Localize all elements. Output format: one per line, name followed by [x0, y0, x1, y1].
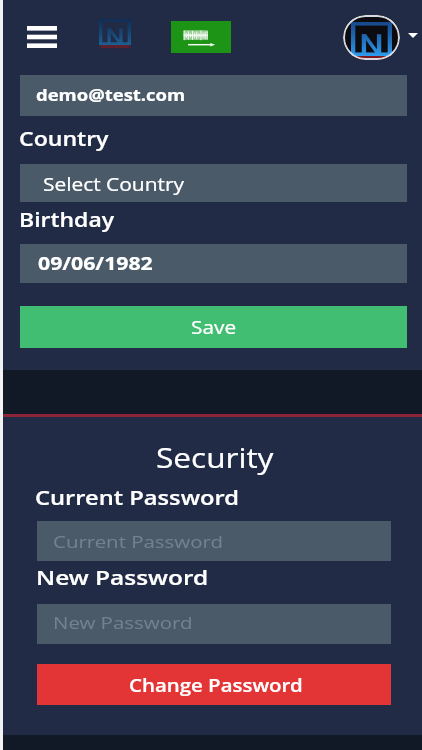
button[interactable] [20, 306, 407, 348]
button[interactable]: Open account menu [403, 26, 422, 45]
staticText: Birthday [19, 206, 114, 232]
staticText: Current Password [35, 484, 240, 511]
button[interactable]: Neom Capital home [96, 17, 133, 51]
button[interactable] [37, 521, 391, 561]
button[interactable]: Change language [171, 21, 231, 53]
button[interactable] [20, 164, 407, 202]
staticText: Security [156, 440, 274, 476]
button[interactable] [20, 75, 407, 116]
staticText: 09/06/1982 [38, 251, 153, 275]
button[interactable]: Account [343, 15, 400, 60]
staticText: Current Password [53, 530, 223, 553]
staticText: Change Password [129, 674, 303, 697]
staticText: New Password [36, 563, 209, 591]
button[interactable] [37, 604, 391, 644]
staticText: Save [191, 315, 236, 339]
button[interactable]: Menu [12, 13, 72, 61]
staticText: New Password [53, 611, 193, 634]
staticText: Select Country [43, 172, 185, 196]
staticText: Country [19, 125, 109, 151]
staticText: demo@test.com [36, 84, 186, 105]
button[interactable] [20, 244, 407, 283]
button[interactable] [37, 664, 391, 705]
